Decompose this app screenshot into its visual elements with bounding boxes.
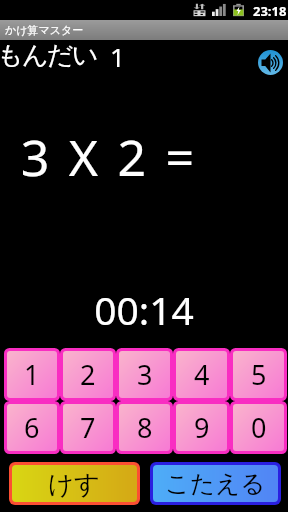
button[interactable]: こたえる bbox=[153, 465, 278, 502]
button[interactable]: 0 bbox=[233, 404, 284, 451]
staticText: 5 bbox=[251, 356, 267, 393]
staticText: 23:18 bbox=[253, 2, 287, 20]
button[interactable]: 8 bbox=[119, 404, 170, 451]
button[interactable]: 9 bbox=[176, 404, 227, 451]
staticText: かけ算マスター bbox=[5, 23, 84, 37]
staticText: 1 bbox=[110, 39, 125, 74]
button[interactable]: 7 bbox=[63, 404, 113, 451]
button[interactable]: 6 bbox=[7, 404, 57, 451]
staticText: 8 bbox=[137, 409, 153, 446]
staticText: 9 bbox=[194, 409, 210, 446]
button[interactable]: 1 bbox=[7, 351, 57, 398]
staticText: 2 bbox=[80, 356, 96, 393]
button[interactable]: 4 bbox=[176, 351, 227, 398]
staticText: けす bbox=[48, 468, 101, 500]
staticText: 00:14 bbox=[0, 283, 288, 336]
button[interactable]: けす bbox=[12, 465, 137, 502]
button[interactable]: 2 bbox=[63, 351, 113, 398]
staticText: 7 bbox=[80, 409, 96, 446]
staticText: こたえる bbox=[165, 468, 266, 499]
staticText: 0 bbox=[251, 409, 267, 446]
button[interactable]: 5 bbox=[233, 351, 284, 398]
button[interactable]: Play sound bbox=[258, 50, 283, 75]
staticText: 4 bbox=[194, 356, 210, 393]
staticText: 6 bbox=[24, 409, 40, 446]
staticText: 1 bbox=[24, 356, 40, 393]
staticText: もんだい bbox=[0, 39, 97, 72]
staticText: 3 X 2 = bbox=[0, 123, 253, 191]
button[interactable]: 3 bbox=[119, 351, 170, 398]
staticText: 3 bbox=[137, 356, 153, 393]
